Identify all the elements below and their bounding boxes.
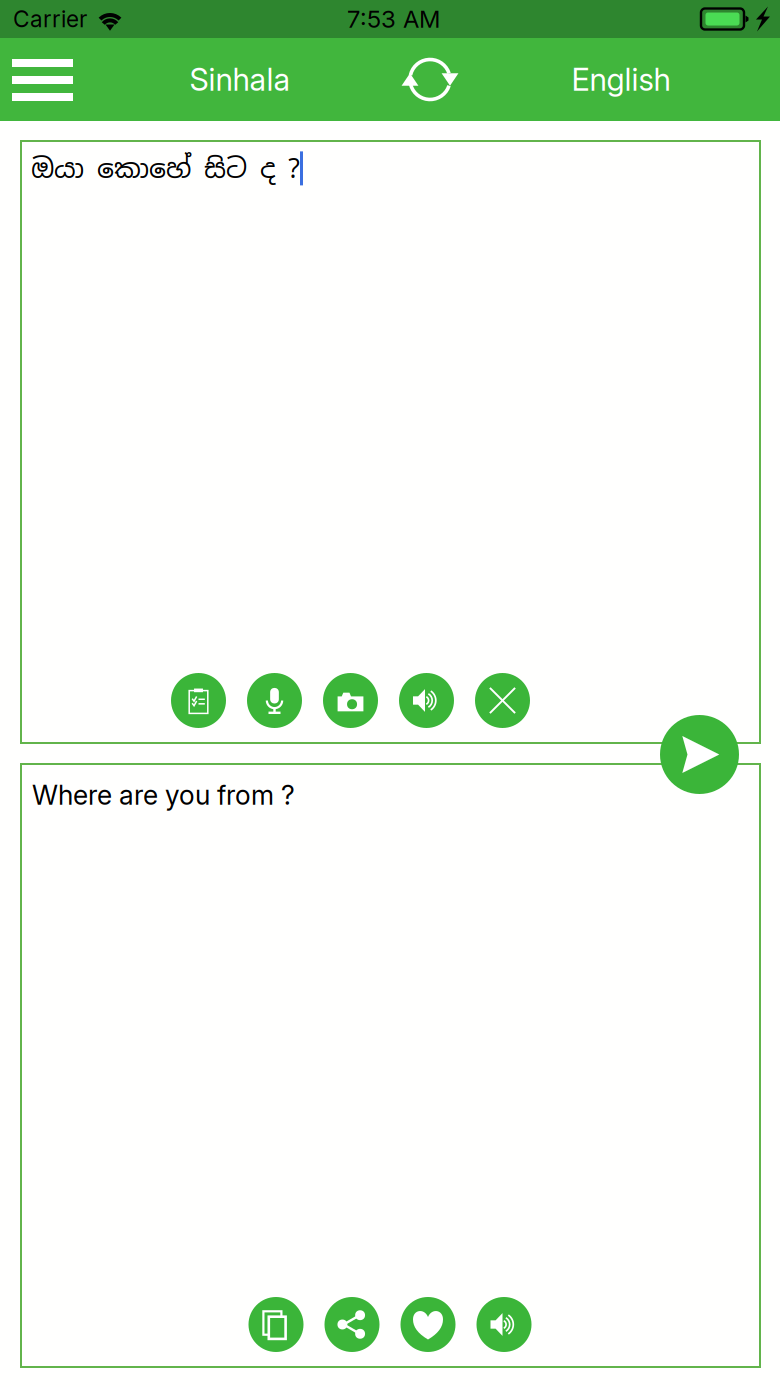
staticText: English [571,61,670,98]
button[interactable]: Favourite [400,1297,455,1352]
button[interactable]: English [540,38,702,121]
button[interactable]: Share [324,1297,379,1352]
button[interactable]: Sinhala [160,38,320,121]
button[interactable]: Paste [171,673,226,728]
button[interactable]: Camera [323,673,378,728]
staticText: Where are you from ? [32,779,295,811]
button[interactable]: Clear [475,673,530,728]
button[interactable]: Voice input [247,673,302,728]
button[interactable]: Menu [0,38,73,121]
button[interactable]: Copy [248,1297,303,1352]
button[interactable]: Listen [399,673,454,728]
staticText: ඔයා කොහේ සිට ද ? [31,151,300,186]
staticText: Carrier [13,5,87,33]
button[interactable]: Listen [476,1297,531,1352]
staticText: Sinhala [189,61,290,98]
staticText: 7:53 AM [347,4,440,33]
button[interactable]: Swap languages [320,38,540,121]
button[interactable]: Translate [660,715,739,794]
